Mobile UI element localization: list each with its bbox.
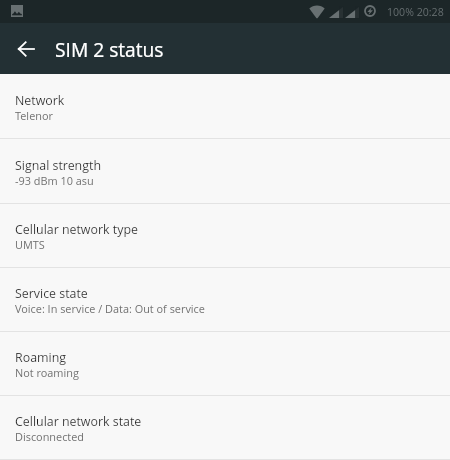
- button[interactable]: Cellular network type: [0, 204, 450, 268]
- button[interactable]: Signal strength: [0, 140, 450, 204]
- staticText: Roaming: [15, 349, 67, 366]
- staticText: 100% 20:28: [387, 5, 444, 19]
- button[interactable]: Network: [0, 75, 450, 139]
- staticText: Network: [15, 92, 65, 109]
- button[interactable]: Cellular network state: [0, 396, 450, 460]
- staticText: Cellular network state: [15, 413, 142, 430]
- staticText: Disconnected: [15, 429, 84, 444]
- staticText: Not roaming: [15, 365, 79, 380]
- staticText: Signal strength: [15, 157, 101, 174]
- staticText: UMTS: [15, 237, 45, 252]
- button[interactable]: Roaming: [0, 332, 450, 396]
- button[interactable]: Service state: [0, 268, 450, 332]
- staticText: Telenor: [15, 108, 53, 123]
- staticText: SIM 2 status: [55, 36, 164, 62]
- staticText: Voice: In service / Data: Out of service: [15, 301, 205, 316]
- staticText: -93 dBm 10 asu: [15, 173, 94, 188]
- button[interactable]: Navigate up: [4, 27, 47, 70]
- staticText: Cellular network type: [15, 221, 138, 238]
- staticText: Service state: [15, 285, 88, 302]
